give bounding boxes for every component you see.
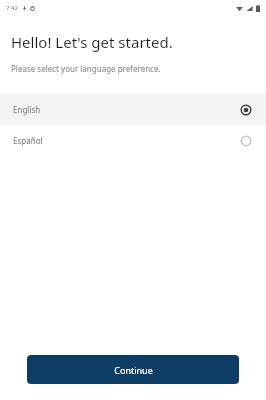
staticText: 7:42 bbox=[6, 4, 18, 12]
staticText: Hello! Let's get started. bbox=[11, 32, 173, 52]
button[interactable]: English bbox=[0, 94, 266, 125]
staticText: Continue bbox=[114, 364, 153, 376]
button[interactable]: Continue bbox=[27, 355, 239, 384]
button[interactable]: Español bbox=[0, 125, 266, 156]
staticText: Español bbox=[13, 135, 43, 146]
staticText: English bbox=[13, 104, 41, 115]
staticText: Please select your language preference. bbox=[11, 63, 161, 74]
